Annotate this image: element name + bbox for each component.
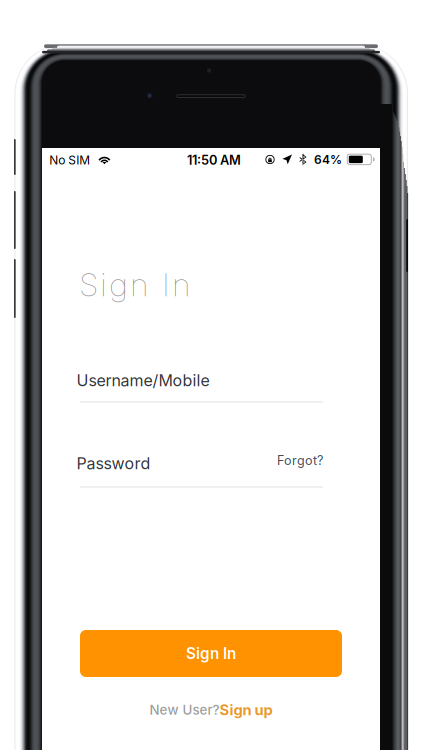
staticText: Password bbox=[76, 454, 150, 473]
staticText: Sign In bbox=[79, 265, 190, 304]
staticText: Forgot? bbox=[277, 453, 323, 468]
staticText: 11:50 AM bbox=[187, 152, 241, 168]
staticText: No SIM bbox=[49, 153, 90, 167]
staticText: Sign up bbox=[219, 701, 272, 719]
staticText: Sign In bbox=[186, 644, 236, 663]
button[interactable]: Sign In bbox=[42, 148, 380, 750]
staticText: Username/Mobile bbox=[76, 371, 209, 390]
staticText: 64% bbox=[314, 152, 342, 167]
staticText: New User? bbox=[149, 702, 219, 718]
button[interactable]: Forgot? bbox=[42, 148, 380, 750]
button[interactable]: Sign up bbox=[219, 701, 272, 719]
